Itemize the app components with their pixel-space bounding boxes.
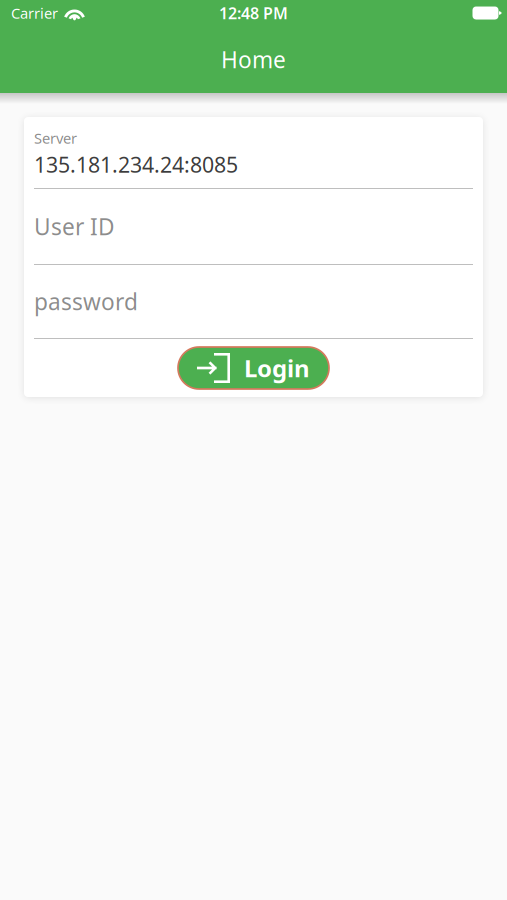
staticText: Server — [34, 128, 77, 148]
staticText: password — [34, 286, 138, 316]
button[interactable]: Login — [178, 347, 329, 389]
staticText: 12:48 PM — [219, 2, 288, 24]
staticText: 135.181.234.24:8085 — [34, 150, 238, 179]
staticText: Home — [221, 44, 286, 74]
staticText: User ID — [34, 211, 115, 241]
staticText: Carrier — [11, 3, 58, 23]
staticText: Login — [244, 352, 310, 384]
